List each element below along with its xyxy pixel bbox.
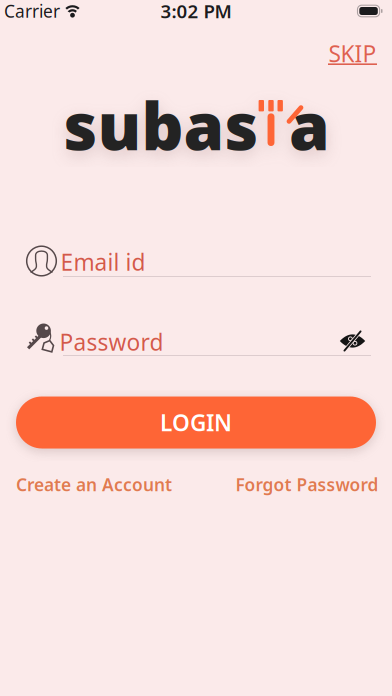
staticText: Forgot Password bbox=[235, 473, 378, 496]
staticText: 3:02 PM bbox=[160, 0, 231, 23]
staticText: LOGIN bbox=[160, 407, 232, 437]
button[interactable]: Create an Account bbox=[16, 470, 172, 499]
button[interactable]: SKIP bbox=[321, 40, 383, 72]
button[interactable]: LOGIN bbox=[16, 396, 376, 448]
staticText: Password bbox=[59, 327, 163, 357]
staticText: a bbox=[289, 82, 330, 168]
staticText: Carrier bbox=[4, 0, 60, 22]
staticText: Email id bbox=[60, 247, 145, 277]
button[interactable]: Forgot Password bbox=[235, 470, 378, 499]
staticText: subas bbox=[63, 82, 258, 168]
button[interactable]: Show password bbox=[339, 330, 367, 352]
staticText: SKIP bbox=[328, 38, 376, 68]
staticText: Create an Account bbox=[16, 473, 172, 496]
